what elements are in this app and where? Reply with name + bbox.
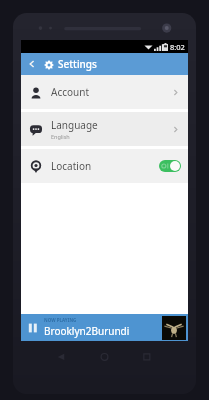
- staticText: Language: [51, 118, 98, 132]
- staticText: English: [51, 133, 70, 140]
- button[interactable]: Pause: [25, 320, 41, 336]
- button[interactable]: Account: [21, 75, 188, 109]
- staticText: NOW PLAYING: [44, 317, 77, 323]
- button[interactable]: Location toggle: [159, 160, 181, 172]
- button[interactable]: Language: [21, 112, 188, 146]
- staticText: Brooklyn2Burundi: [44, 324, 130, 338]
- button[interactable]: Settings: [41, 57, 56, 72]
- button[interactable]: Location: [21, 149, 188, 183]
- button[interactable]: Back: [25, 57, 39, 71]
- staticText: Location: [51, 159, 92, 173]
- staticText: Account: [51, 85, 90, 99]
- button[interactable]: Pause: [21, 314, 188, 341]
- button[interactable]: Album art: [162, 316, 186, 340]
- staticText: Settings: [58, 57, 97, 71]
- staticText: 8:02: [170, 42, 185, 52]
